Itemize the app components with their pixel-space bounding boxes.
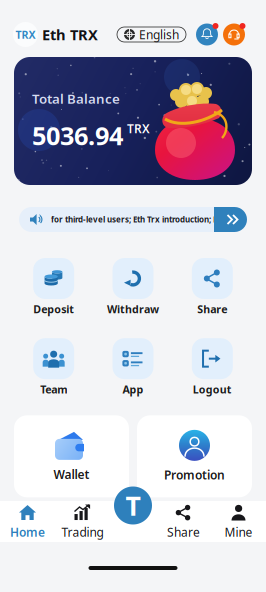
button[interactable]: Withdraw bbox=[93, 258, 173, 316]
staticText: Home bbox=[10, 524, 45, 540]
button[interactable]: Home bbox=[0, 497, 55, 546]
staticText: Share bbox=[197, 302, 227, 316]
button[interactable]: for third-level users; Eth Trx introduct… bbox=[19, 207, 247, 232]
button[interactable]: Team bbox=[14, 338, 93, 396]
staticText: Wallet bbox=[53, 466, 89, 482]
button[interactable]: Mine bbox=[211, 497, 266, 546]
button[interactable]: English bbox=[117, 27, 186, 42]
staticText: Deposit bbox=[33, 302, 74, 316]
button[interactable]: Trading bbox=[55, 497, 110, 546]
staticText: Trading bbox=[61, 524, 103, 540]
staticText: Withdraw bbox=[107, 302, 159, 316]
button[interactable]: Deposit bbox=[14, 258, 93, 316]
button[interactable]: Support bbox=[222, 22, 246, 46]
staticText: TRX bbox=[127, 120, 150, 136]
button[interactable]: Logout bbox=[173, 338, 252, 396]
staticText: Share bbox=[167, 524, 200, 540]
staticText: Team bbox=[40, 382, 67, 396]
staticText: 5036.94 bbox=[32, 118, 123, 152]
staticText: Total Balance bbox=[32, 90, 120, 107]
button[interactable]: TRX bbox=[114, 486, 152, 524]
staticText: for third-level users; Eth Trx introduct… bbox=[51, 214, 223, 225]
button[interactable]: Wallet bbox=[14, 415, 129, 497]
staticText: Mine bbox=[224, 524, 252, 540]
staticText: English bbox=[139, 26, 179, 42]
staticText: Eth TRX bbox=[42, 25, 98, 44]
staticText: App bbox=[122, 382, 143, 396]
button[interactable]: Share bbox=[173, 258, 252, 316]
staticText: Logout bbox=[193, 382, 232, 396]
button[interactable]: Share bbox=[156, 497, 211, 546]
button[interactable]: TRX bbox=[13, 22, 98, 47]
button[interactable]: Notifications bbox=[195, 22, 219, 46]
staticText: T bbox=[125, 488, 140, 523]
staticText: Promotion bbox=[164, 467, 225, 483]
staticText: TRX bbox=[15, 27, 35, 42]
button[interactable]: Promotion bbox=[137, 415, 252, 497]
button[interactable]: App bbox=[93, 338, 173, 396]
